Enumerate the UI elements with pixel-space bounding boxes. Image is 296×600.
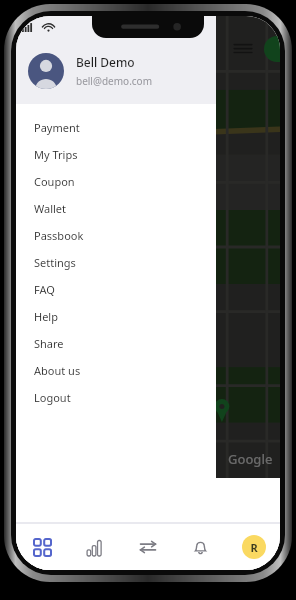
button[interactable]: Statistics — [68, 524, 121, 570]
button[interactable]: Settings — [16, 249, 216, 276]
staticText: bell@demo.com — [76, 74, 153, 88]
staticText: About us — [34, 363, 81, 378]
button[interactable]: Share — [16, 330, 216, 357]
staticText: FAQ — [34, 282, 55, 297]
staticText: Share — [34, 336, 64, 351]
staticText: Settings — [34, 255, 76, 270]
staticText: R — [250, 540, 258, 555]
button[interactable]: Notifications — [174, 524, 227, 570]
button[interactable]: Open navigation menu — [232, 38, 254, 60]
staticText: Coupon — [34, 174, 75, 189]
button[interactable]: My Trips — [16, 141, 216, 168]
button[interactable]: Passbook — [16, 222, 216, 249]
staticText: My Trips — [34, 147, 78, 162]
staticText: Logout — [34, 390, 71, 405]
staticText: Help — [34, 309, 58, 324]
button[interactable]: Transfers — [121, 524, 174, 570]
staticText: Wallet — [34, 201, 67, 216]
button[interactable]: Payment — [16, 114, 216, 141]
button[interactable]: Logout — [16, 384, 216, 411]
button[interactable]: Dashboard — [16, 524, 68, 570]
button[interactable]: Wallet — [16, 195, 216, 222]
button[interactable]: Help — [16, 303, 216, 330]
button[interactable]: Online toggle — [264, 36, 280, 62]
staticText: Payment — [34, 120, 80, 135]
staticText: Google — [228, 450, 273, 468]
button[interactable]: Coupon — [16, 168, 216, 195]
button[interactable]: About us — [16, 357, 216, 384]
button[interactable]: FAQ — [16, 276, 216, 303]
button[interactable]: Bell Demo — [16, 38, 216, 104]
staticText: Bell Demo — [76, 54, 135, 70]
button[interactable]: Profile — [227, 524, 280, 570]
staticText: Passbook — [34, 228, 84, 243]
